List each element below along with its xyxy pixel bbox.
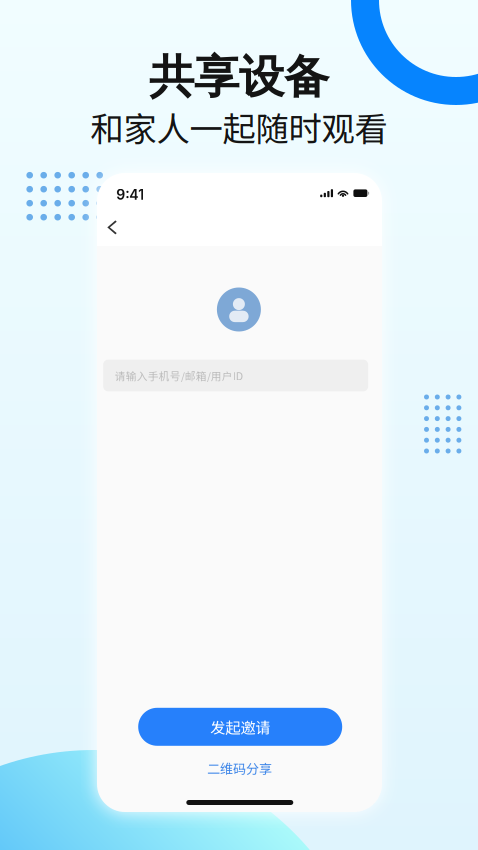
button[interactable]: 二维码分享 bbox=[179, 757, 299, 779]
staticText: 9:41 bbox=[116, 186, 144, 203]
staticText: 二维码分享 bbox=[207, 758, 272, 777]
button[interactable]: Back bbox=[98, 211, 126, 243]
staticText: 请输入手机号/邮箱/用户ID bbox=[115, 368, 243, 383]
staticText: 发起邀请 bbox=[210, 716, 270, 738]
button[interactable]: 发起邀请 bbox=[138, 708, 342, 746]
staticText: 共享设备 bbox=[149, 48, 329, 106]
staticText: 和家人一起随时观看 bbox=[90, 103, 387, 151]
